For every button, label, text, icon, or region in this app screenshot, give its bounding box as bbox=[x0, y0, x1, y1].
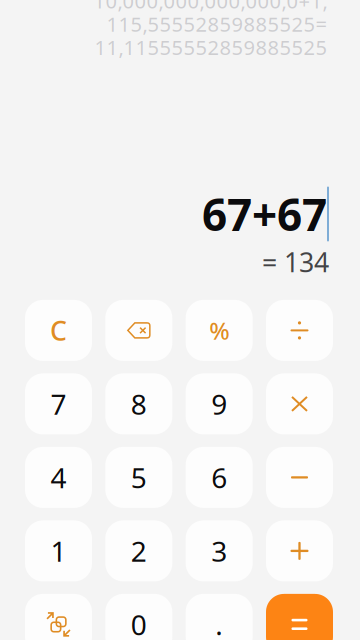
staticText: 0 bbox=[131, 606, 147, 640]
button[interactable]: 2 bbox=[105, 520, 172, 581]
button[interactable]: 9 bbox=[186, 373, 253, 434]
button[interactable]: Plus bbox=[266, 520, 333, 581]
staticText: 2 bbox=[131, 532, 147, 569]
button[interactable]: Unit converter bbox=[25, 594, 92, 640]
staticText: 8 bbox=[131, 385, 147, 422]
staticText: = 134 bbox=[262, 244, 329, 280]
staticText: 5 bbox=[131, 459, 147, 496]
button[interactable]: . bbox=[186, 594, 253, 640]
button[interactable]: % bbox=[186, 300, 253, 361]
staticText: . bbox=[215, 606, 223, 640]
staticText: 11,11555552859885525 bbox=[94, 34, 327, 61]
staticText: C bbox=[50, 313, 67, 348]
button[interactable]: 3 bbox=[186, 520, 253, 581]
staticText: 7 bbox=[50, 385, 66, 422]
button[interactable]: 1 bbox=[25, 520, 92, 581]
button[interactable]: 0 bbox=[105, 594, 172, 640]
button[interactable]: 6 bbox=[186, 447, 253, 508]
button[interactable]: C bbox=[25, 300, 92, 361]
button[interactable]: Backspace bbox=[105, 300, 172, 361]
button[interactable]: Equals bbox=[266, 594, 333, 640]
button[interactable]: Minus bbox=[266, 447, 333, 508]
staticText: 9 bbox=[211, 385, 227, 422]
staticText: 4 bbox=[50, 459, 66, 496]
staticText: % bbox=[209, 314, 229, 346]
staticText: 10,000,000,000,000,0+1, bbox=[93, 0, 327, 14]
button[interactable]: 4 bbox=[25, 447, 92, 508]
staticText: 1 bbox=[50, 532, 66, 569]
button[interactable]: Divide bbox=[266, 300, 333, 361]
button[interactable]: Multiply bbox=[266, 373, 333, 434]
staticText: 3 bbox=[211, 532, 227, 569]
button[interactable]: 8 bbox=[105, 373, 172, 434]
button[interactable]: 5 bbox=[105, 447, 172, 508]
staticText: 67+67 bbox=[202, 185, 327, 243]
staticText: 115,55552859885525= bbox=[106, 11, 327, 37]
staticText: 6 bbox=[211, 459, 227, 496]
button[interactable]: 7 bbox=[25, 373, 92, 434]
